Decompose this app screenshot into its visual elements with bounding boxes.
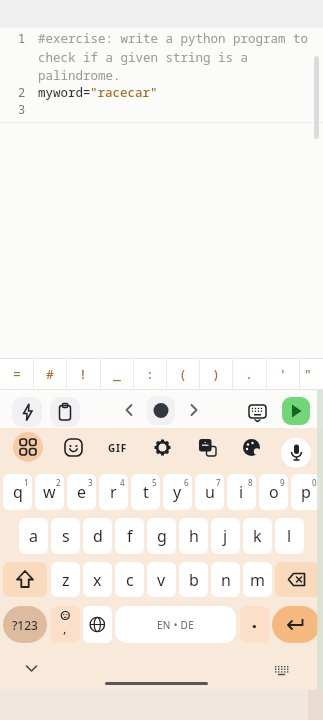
staticText: e bbox=[77, 481, 87, 503]
button[interactable] bbox=[50, 397, 80, 427]
staticText: myword= bbox=[38, 84, 91, 101]
staticText: 1 bbox=[24, 477, 29, 488]
button[interactable]: m bbox=[243, 562, 272, 597]
button[interactable]: . bbox=[232, 358, 265, 389]
staticText: m bbox=[250, 569, 265, 591]
staticText: . bbox=[245, 365, 253, 383]
button[interactable]: k bbox=[243, 518, 272, 554]
button[interactable]: p bbox=[291, 474, 320, 510]
staticText: 1 bbox=[18, 30, 26, 46]
button[interactable] bbox=[240, 606, 269, 643]
button[interactable]: : bbox=[133, 358, 166, 389]
button[interactable]: = bbox=[0, 358, 33, 389]
staticText: ) bbox=[212, 365, 220, 383]
staticText: check if a given string is a bbox=[38, 49, 249, 66]
button[interactable]: v bbox=[147, 562, 176, 597]
staticText: 2 bbox=[18, 84, 26, 100]
button[interactable]: y bbox=[163, 474, 192, 510]
button[interactable]: ! bbox=[66, 358, 99, 389]
staticText: 8 bbox=[248, 477, 253, 488]
staticText: 6 bbox=[184, 477, 189, 488]
staticText: #exercise: write a python program to bbox=[38, 30, 309, 47]
button[interactable]: ' bbox=[266, 358, 299, 389]
button[interactable] bbox=[83, 606, 112, 643]
button[interactable]: e bbox=[67, 474, 96, 510]
staticText: 4 bbox=[120, 477, 125, 488]
staticText: 3 bbox=[88, 477, 93, 488]
button[interactable]: " bbox=[299, 358, 317, 389]
button[interactable] bbox=[3, 562, 47, 597]
staticText: u bbox=[205, 481, 215, 503]
staticText: j bbox=[223, 525, 228, 547]
staticText: palindrome. bbox=[38, 67, 121, 84]
button[interactable]: q bbox=[3, 474, 32, 510]
button[interactable]: w bbox=[35, 474, 64, 510]
staticText: 0 bbox=[312, 477, 317, 488]
staticText: = bbox=[13, 365, 21, 383]
button[interactable] bbox=[13, 432, 43, 462]
staticText: o bbox=[269, 481, 279, 503]
button[interactable]: GIF bbox=[104, 438, 132, 458]
staticText: h bbox=[189, 525, 199, 547]
button[interactable]: n bbox=[211, 562, 240, 597]
staticText: b bbox=[189, 569, 199, 591]
staticText: ( bbox=[179, 365, 187, 383]
staticText: GIF bbox=[108, 441, 128, 455]
button[interactable]: t bbox=[131, 474, 160, 510]
button[interactable]: ( bbox=[166, 358, 199, 389]
button[interactable]: _ bbox=[100, 358, 133, 389]
button[interactable]: ) bbox=[199, 358, 232, 389]
button[interactable]: f bbox=[115, 518, 144, 554]
button[interactable]: a bbox=[19, 518, 48, 554]
button[interactable]: j bbox=[211, 518, 240, 554]
button[interactable] bbox=[152, 437, 173, 458]
button[interactable]: s bbox=[51, 518, 80, 554]
button[interactable] bbox=[286, 442, 307, 463]
button[interactable]: , bbox=[51, 606, 80, 643]
button[interactable] bbox=[147, 396, 175, 425]
staticText: s bbox=[62, 525, 70, 547]
button[interactable]: g bbox=[147, 518, 176, 554]
button[interactable]: i bbox=[227, 474, 256, 510]
button[interactable]: # bbox=[33, 358, 66, 389]
button[interactable]: z bbox=[51, 562, 80, 597]
button[interactable] bbox=[241, 437, 262, 458]
button[interactable] bbox=[12, 397, 42, 427]
staticText: q bbox=[13, 481, 23, 503]
button[interactable]: l bbox=[275, 518, 304, 554]
button[interactable]: h bbox=[179, 518, 208, 554]
button[interactable] bbox=[275, 562, 320, 597]
button[interactable] bbox=[272, 606, 320, 643]
staticText: g bbox=[157, 525, 167, 547]
staticText: w bbox=[43, 481, 56, 503]
button[interactable] bbox=[63, 437, 84, 458]
button[interactable]: c bbox=[115, 562, 144, 597]
staticText: ?123 bbox=[12, 617, 38, 633]
staticText: " bbox=[304, 365, 312, 383]
staticText: "racecar" bbox=[90, 84, 158, 101]
staticText: x bbox=[93, 569, 102, 591]
button[interactable]: r bbox=[99, 474, 128, 510]
staticText: n bbox=[221, 569, 231, 591]
staticText: 5 bbox=[152, 477, 157, 488]
button[interactable]: x bbox=[83, 562, 112, 597]
staticText: ' bbox=[279, 365, 287, 383]
button[interactable]: o bbox=[259, 474, 288, 510]
staticText: l bbox=[287, 525, 292, 547]
button[interactable]: d bbox=[83, 518, 112, 554]
staticText: y bbox=[173, 481, 182, 503]
staticText: # bbox=[46, 365, 54, 383]
button[interactable]: u bbox=[195, 474, 224, 510]
button[interactable] bbox=[282, 397, 310, 425]
staticText: ! bbox=[79, 365, 87, 383]
button[interactable] bbox=[197, 437, 218, 458]
staticText: v bbox=[157, 569, 166, 591]
button[interactable]: b bbox=[179, 562, 208, 597]
staticText: _ bbox=[113, 365, 121, 383]
staticText: a bbox=[29, 525, 38, 547]
staticText: 2 bbox=[56, 477, 61, 488]
staticText: 9 bbox=[280, 477, 285, 488]
staticText: f bbox=[127, 525, 133, 547]
button[interactable]: EN • DE bbox=[115, 606, 236, 643]
button[interactable]: ?123 bbox=[3, 606, 47, 643]
